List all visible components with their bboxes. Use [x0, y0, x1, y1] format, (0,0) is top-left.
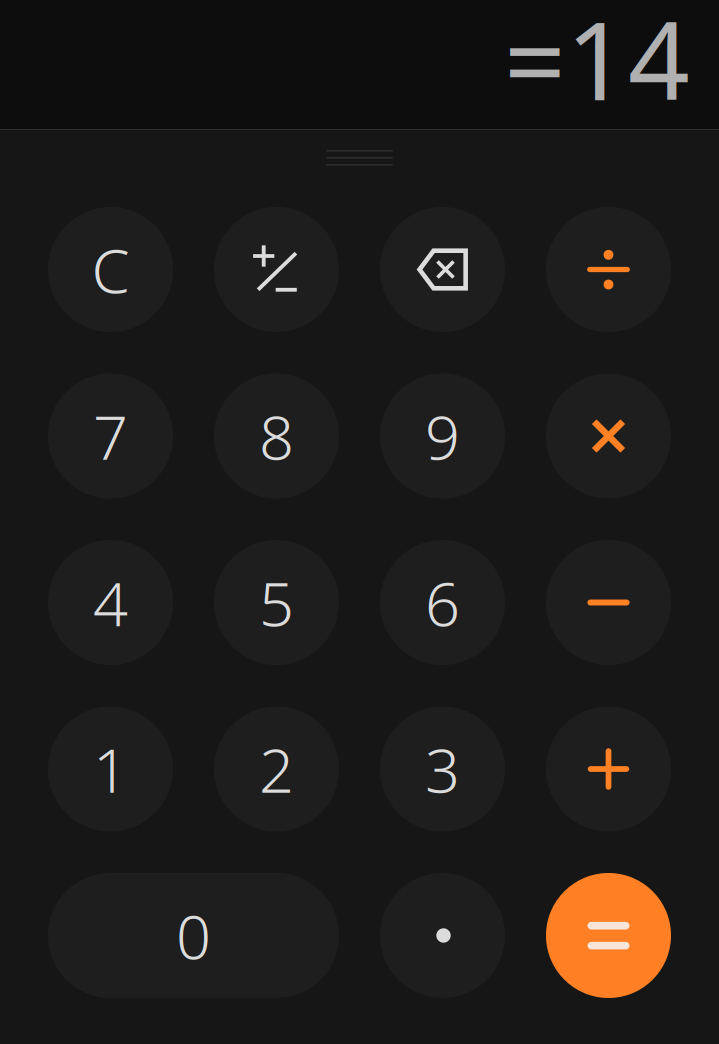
staticText: 9	[425, 395, 460, 477]
button[interactable]: Divide	[546, 207, 671, 332]
button[interactable]: Delete	[380, 207, 505, 332]
button[interactable]: Subtract	[546, 540, 671, 665]
button[interactable]: 6	[380, 540, 505, 665]
button[interactable]: Equals	[546, 873, 671, 998]
staticText: 2	[259, 728, 294, 810]
button[interactable]: 7	[48, 373, 173, 498]
button[interactable]: C	[48, 207, 173, 332]
staticText: 5	[259, 562, 294, 643]
staticText: 7	[93, 395, 128, 477]
button[interactable]: 0	[48, 873, 339, 998]
button[interactable]: 3	[380, 706, 505, 831]
button[interactable]: Add	[546, 706, 671, 831]
staticText: 0	[176, 895, 211, 976]
staticText: 8	[259, 395, 294, 477]
button[interactable]: Decimal point	[380, 873, 505, 998]
staticText: 3	[425, 728, 460, 810]
button[interactable]: 8	[214, 373, 339, 498]
staticText: 1	[93, 728, 128, 810]
button[interactable]: 2	[214, 706, 339, 831]
button[interactable]: Toggle sign	[214, 207, 339, 332]
button[interactable]: 1	[48, 706, 173, 831]
staticText: =14	[504, 0, 690, 130]
button[interactable]: 5	[214, 540, 339, 665]
staticText: 6	[425, 562, 460, 643]
staticText: 4	[93, 562, 128, 643]
button[interactable]: Multiply	[546, 373, 671, 498]
button[interactable]: 4	[48, 540, 173, 665]
button[interactable]: 9	[380, 373, 505, 498]
staticText: C	[91, 229, 129, 310]
